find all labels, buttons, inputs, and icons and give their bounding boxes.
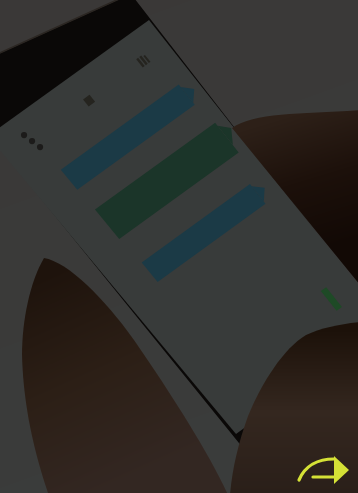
other: Hands holding a phone showing a chat con… <box>0 0 358 493</box>
button[interactable]: Hands holding a phone showing a chat con… <box>0 0 358 493</box>
